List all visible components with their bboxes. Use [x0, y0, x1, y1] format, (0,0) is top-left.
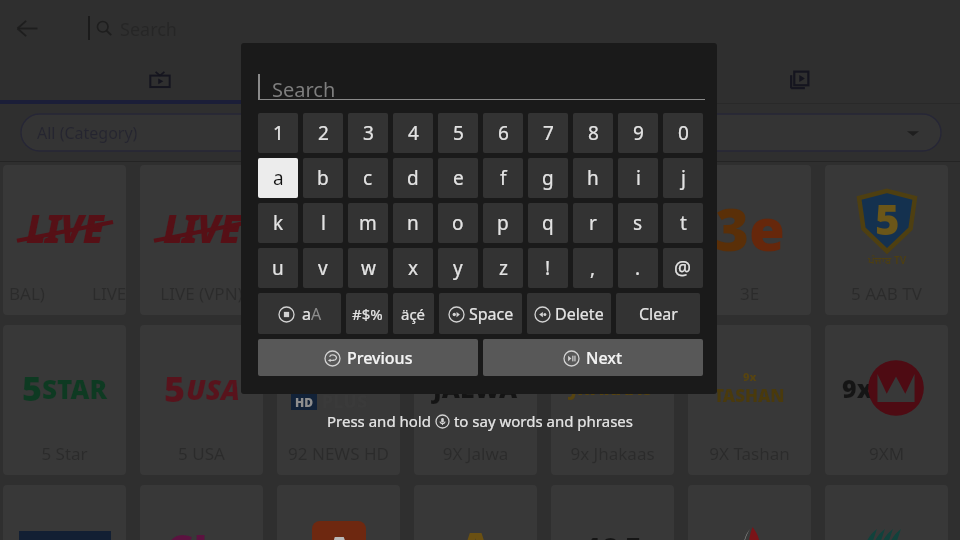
- button[interactable]: 0: [663, 113, 703, 153]
- button[interactable]: A: [414, 485, 537, 540]
- button[interactable]: i: [618, 158, 658, 198]
- button[interactable]: All (Category): [21, 114, 941, 151]
- staticText: b: [317, 165, 329, 191]
- button[interactable]: f: [483, 158, 523, 198]
- button[interactable]: z: [483, 248, 523, 288]
- button[interactable]: Aastha: [825, 485, 948, 540]
- button[interactable]: v: [303, 248, 343, 288]
- button[interactable]: ,: [573, 248, 613, 288]
- button[interactable]: c: [348, 158, 388, 198]
- button[interactable]: LIVE: [3, 165, 126, 315]
- button[interactable]: u: [258, 248, 298, 288]
- staticText: A: [311, 303, 322, 325]
- staticText: 5: [875, 190, 900, 247]
- button[interactable]: q: [528, 203, 568, 243]
- button[interactable]: .: [618, 248, 658, 288]
- button[interactable]: t: [663, 203, 703, 243]
- button[interactable]: Back: [11, 12, 44, 45]
- button[interactable]: 8: [573, 113, 613, 153]
- staticText: j: [681, 165, 686, 191]
- staticText: 9x: [842, 371, 873, 405]
- button[interactable]: h: [573, 158, 613, 198]
- staticText: s: [633, 210, 643, 236]
- button[interactable]: 5: [825, 165, 948, 315]
- button[interactable]: r: [573, 203, 613, 243]
- button[interactable]: k: [258, 203, 298, 243]
- button[interactable]: Next: [483, 339, 703, 376]
- button[interactable]: Library: [640, 57, 960, 103]
- staticText: v: [318, 255, 328, 281]
- button[interactable]: Previous: [258, 339, 478, 376]
- button[interactable]: 3: [348, 113, 388, 153]
- button[interactable]: CL: [140, 485, 263, 540]
- button[interactable]: 9x: [688, 325, 811, 475]
- button[interactable]: 4: [393, 113, 433, 153]
- button[interactable]: JALWA: [414, 325, 537, 475]
- button[interactable]: 5: [3, 325, 126, 475]
- staticText: 4: [408, 120, 419, 146]
- button[interactable]: p: [483, 203, 523, 243]
- button[interactable]: 1: [258, 113, 298, 153]
- button[interactable]: w: [348, 248, 388, 288]
- button[interactable]: Symbols: [346, 293, 388, 334]
- button[interactable]: A: [277, 485, 400, 540]
- button[interactable]: e: [438, 158, 478, 198]
- button[interactable]: Accents: [393, 293, 434, 334]
- button[interactable]: y: [438, 248, 478, 288]
- button[interactable]: TV: [551, 165, 674, 315]
- button[interactable]: 6: [483, 113, 523, 153]
- staticText: TV: [596, 211, 630, 246]
- button[interactable]: l: [303, 203, 343, 243]
- staticText: y: [453, 255, 463, 281]
- staticText: 5: [453, 120, 464, 146]
- button[interactable]: Library: [320, 57, 640, 103]
- staticText: t: [680, 210, 687, 236]
- button[interactable]: Delete: [527, 293, 611, 334]
- button[interactable]: n: [393, 203, 433, 243]
- button[interactable]: Space: [439, 293, 522, 334]
- button[interactable]: g: [528, 158, 568, 198]
- staticText: 9x Jhakaas: [551, 442, 674, 465]
- staticText: 4&5: [583, 528, 643, 540]
- button[interactable]: Live TV: [0, 57, 320, 103]
- button[interactable]: 5: [438, 113, 478, 153]
- button[interactable]: TV: [277, 165, 400, 315]
- button[interactable]: Clear: [616, 293, 700, 334]
- button[interactable]: Aaj: [688, 485, 811, 540]
- button[interactable]: 5: [140, 325, 263, 475]
- button[interactable]: 3: [688, 165, 811, 315]
- staticText: k: [273, 210, 284, 236]
- staticText: 5 AAB TV: [825, 282, 948, 305]
- staticText: m: [359, 210, 377, 236]
- button[interactable]: x: [393, 248, 433, 288]
- staticText: u: [272, 255, 284, 281]
- button[interactable]: m: [348, 203, 388, 243]
- button[interactable]: s: [618, 203, 658, 243]
- button[interactable]: LIVE: [140, 165, 263, 315]
- staticText: d: [407, 165, 419, 191]
- button[interactable]: @: [663, 248, 703, 288]
- button[interactable]: 9x: [825, 325, 948, 475]
- button[interactable]: JHAKAAS: [551, 325, 674, 475]
- staticText: g: [542, 165, 554, 191]
- button[interactable]: !: [528, 248, 568, 288]
- button[interactable]: TV: [414, 165, 537, 315]
- staticText: e: [453, 165, 464, 191]
- button[interactable]: 7: [528, 113, 568, 153]
- staticText: 9X Tashan: [688, 442, 811, 465]
- button[interactable]: b: [303, 158, 343, 198]
- button[interactable]: d: [393, 158, 433, 198]
- staticText: CL: [166, 520, 218, 540]
- button[interactable]: 2: [303, 113, 343, 153]
- button[interactable]: AONE: [3, 485, 126, 540]
- button[interactable]: NEWS: [277, 325, 400, 475]
- button[interactable]: 9: [618, 113, 658, 153]
- button[interactable]: j: [663, 158, 703, 198]
- button[interactable]: Toggle case: [258, 293, 341, 334]
- staticText: Delete: [555, 303, 604, 325]
- button[interactable]: a: [258, 158, 298, 198]
- button[interactable]: o: [438, 203, 478, 243]
